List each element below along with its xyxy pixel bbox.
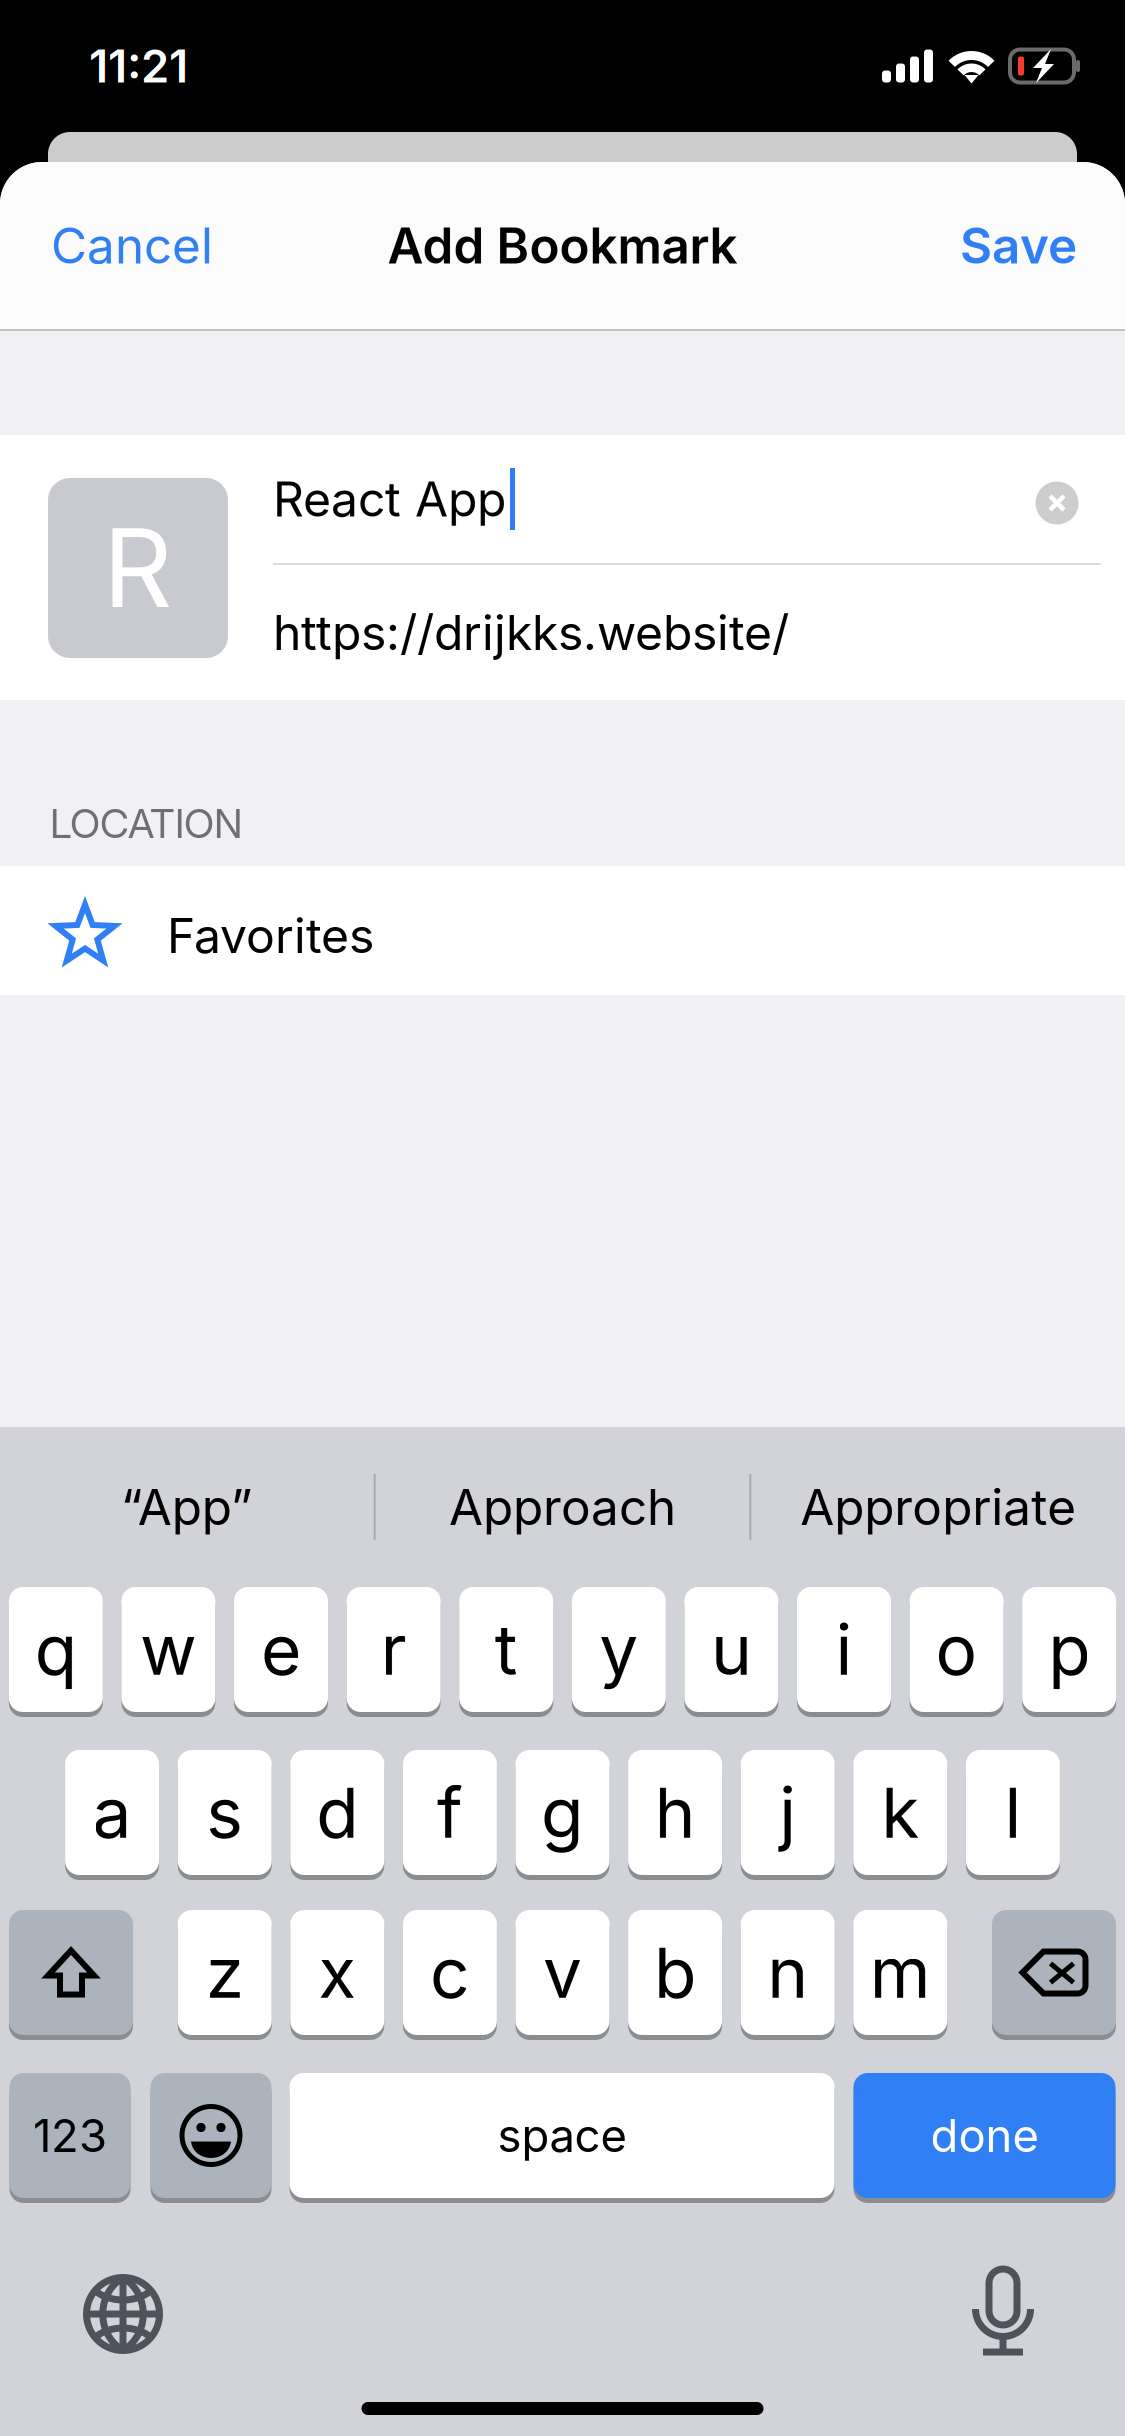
staticText: g: [541, 1772, 584, 1853]
staticText: 11:21: [89, 39, 188, 93]
staticText: c: [430, 1932, 470, 2013]
staticText: space: [497, 2109, 626, 2162]
staticText: LOCATION: [50, 800, 243, 847]
staticText: o: [936, 1609, 978, 1690]
staticText: s: [206, 1772, 243, 1853]
button[interactable]: f: [403, 1750, 497, 1875]
button[interactable]: u: [684, 1587, 778, 1712]
staticText: done: [930, 2109, 1038, 2162]
button[interactable]: d: [290, 1750, 384, 1875]
button[interactable]: m: [853, 1910, 947, 2035]
button[interactable]: Clear text: [1013, 451, 1101, 547]
staticText: z: [206, 1932, 244, 2013]
button[interactable]: o: [910, 1587, 1004, 1712]
staticText: k: [881, 1772, 919, 1853]
staticText: j: [779, 1772, 796, 1853]
staticText: Save: [960, 216, 1077, 275]
staticText: t: [495, 1609, 518, 1690]
button[interactable]: “App”: [0, 1427, 374, 1587]
button[interactable]: Dictate: [943, 2255, 1063, 2373]
button[interactable]: t: [459, 1587, 553, 1712]
staticText: 123: [33, 2109, 107, 2162]
button[interactable]: q: [9, 1587, 103, 1712]
button[interactable]: w: [121, 1587, 215, 1712]
button[interactable]: x: [290, 1910, 384, 2035]
button[interactable]: Emoji: [150, 2073, 271, 2198]
button[interactable]: a: [65, 1750, 159, 1875]
button[interactable]: p: [1022, 1587, 1116, 1712]
button[interactable]: l: [966, 1750, 1060, 1875]
staticText: w: [140, 1609, 197, 1690]
staticText: v: [543, 1932, 582, 2013]
staticText: f: [437, 1772, 463, 1853]
staticText: Appropriate: [800, 1478, 1076, 1536]
button[interactable]: j: [741, 1750, 835, 1875]
button[interactable]: r: [347, 1587, 441, 1712]
button[interactable]: c: [403, 1910, 497, 2035]
staticText: Add Bookmark: [387, 216, 737, 275]
staticText: p: [1048, 1609, 1090, 1690]
button[interactable]: Next keyboard: [63, 2255, 183, 2373]
staticText: h: [655, 1772, 696, 1853]
button[interactable]: s: [178, 1750, 272, 1875]
staticText: React App: [273, 471, 506, 527]
button[interactable]: z: [178, 1910, 272, 2035]
staticText: r: [381, 1609, 407, 1690]
button[interactable]: n: [741, 1910, 835, 2035]
button[interactable]: space: [289, 2073, 834, 2198]
staticText: m: [870, 1932, 931, 2013]
staticText: R: [103, 504, 173, 632]
staticText: n: [767, 1932, 808, 2013]
staticText: x: [318, 1932, 356, 2013]
staticText: Cancel: [51, 216, 213, 275]
button[interactable]: h: [628, 1750, 722, 1875]
staticText: “App”: [121, 1478, 253, 1536]
button[interactable]: v: [515, 1910, 609, 2035]
staticText: https://drijkks.website/: [273, 604, 789, 661]
staticText: a: [93, 1772, 132, 1853]
button[interactable]: Approach: [376, 1427, 749, 1587]
button[interactable]: i: [797, 1587, 891, 1712]
button[interactable]: y: [572, 1587, 666, 1712]
button[interactable]: Save: [920, 186, 1125, 305]
button[interactable]: Favorites: [0, 866, 1125, 995]
staticText: l: [1004, 1772, 1021, 1853]
staticText: u: [711, 1609, 752, 1690]
button[interactable]: k: [853, 1750, 947, 1875]
staticText: i: [835, 1609, 852, 1690]
button[interactable]: 123: [9, 2073, 130, 2198]
button[interactable]: e: [234, 1587, 328, 1712]
button[interactable]: g: [515, 1750, 609, 1875]
staticText: e: [261, 1609, 301, 1690]
staticText: Approach: [449, 1478, 676, 1536]
button[interactable]: Delete: [992, 1910, 1116, 2035]
button[interactable]: done: [853, 2073, 1115, 2198]
staticText: q: [35, 1609, 77, 1690]
button[interactable]: b: [628, 1910, 722, 2035]
staticText: b: [654, 1932, 696, 2013]
staticText: y: [599, 1609, 638, 1690]
staticText: Favorites: [167, 907, 374, 964]
staticText: d: [316, 1772, 358, 1853]
button[interactable]: Shift: [9, 1910, 133, 2035]
button[interactable]: Appropriate: [751, 1427, 1125, 1587]
button[interactable]: Cancel: [0, 186, 253, 305]
